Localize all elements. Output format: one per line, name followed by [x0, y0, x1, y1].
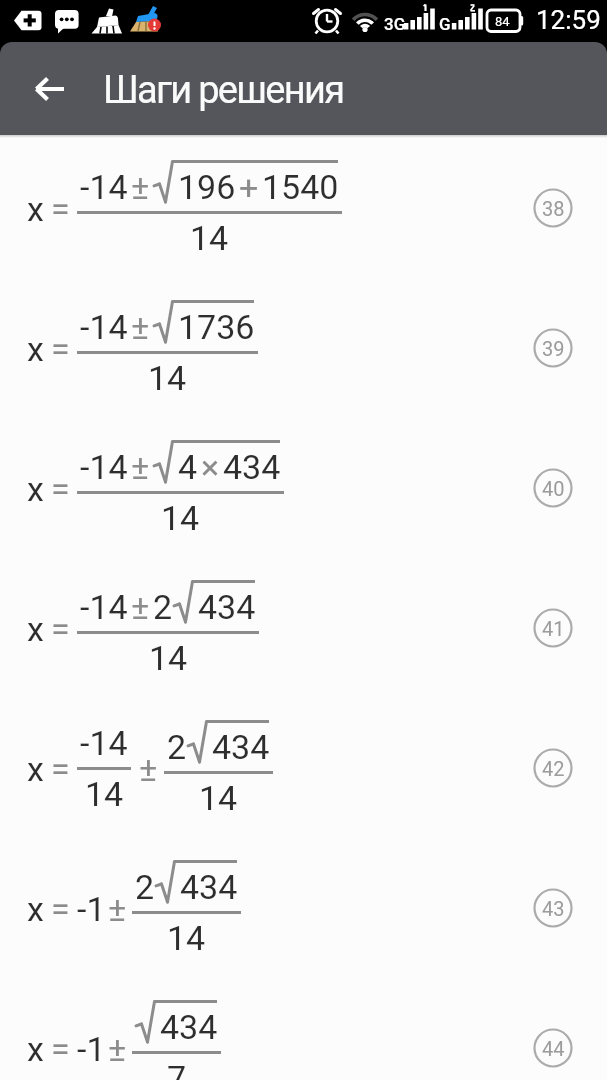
staticText: -14	[80, 307, 128, 347]
staticText: =	[51, 1029, 70, 1069]
button[interactable]	[0, 42, 99, 135]
staticText: 84	[495, 14, 510, 29]
staticText: x	[27, 889, 44, 929]
staticText: -14	[80, 447, 128, 487]
staticText: 434	[223, 447, 281, 487]
staticText: Шаги решения	[103, 68, 344, 113]
staticText: 14	[149, 638, 188, 678]
button[interactable]: x	[0, 838, 607, 978]
staticText: 12:59	[536, 5, 601, 35]
staticText: ±	[131, 587, 150, 627]
staticText: =	[51, 609, 70, 649]
staticText: 434	[212, 727, 270, 767]
staticText: G	[439, 14, 451, 34]
staticText: 434	[160, 1007, 218, 1047]
staticText: 2	[167, 727, 187, 767]
staticText: 196	[178, 167, 236, 207]
staticText: +	[239, 167, 259, 207]
staticText: 39	[542, 337, 565, 360]
staticText: =	[51, 749, 70, 789]
staticText: =	[51, 889, 70, 929]
staticText: 14	[199, 778, 238, 818]
staticText: ×	[201, 447, 220, 487]
staticText: 2	[153, 587, 173, 627]
staticText: 3G	[384, 14, 406, 34]
staticText: 38	[542, 197, 565, 220]
staticText: -1	[77, 1029, 106, 1069]
staticText: 4	[178, 447, 198, 487]
button[interactable]: x	[0, 418, 607, 558]
staticText: =	[51, 189, 70, 229]
staticText: ±	[139, 749, 158, 789]
staticText: 41	[542, 617, 565, 640]
staticText: ±	[108, 1029, 127, 1069]
staticText: 434	[180, 867, 238, 907]
staticText: =	[51, 469, 70, 509]
staticText: -14	[80, 723, 128, 763]
staticText: 14	[148, 358, 187, 398]
button[interactable]: x	[0, 138, 607, 278]
staticText: x	[27, 609, 44, 649]
staticText: 7	[167, 1058, 187, 1080]
staticText: ±	[131, 167, 150, 207]
staticText: 14	[190, 218, 229, 258]
staticText: 14	[161, 498, 200, 538]
staticText: ±	[108, 889, 127, 929]
staticText: 43	[542, 897, 565, 920]
staticText: x	[27, 1029, 44, 1069]
staticText: -14	[80, 587, 128, 627]
button[interactable]: x	[0, 978, 607, 1080]
staticText: x	[27, 469, 44, 509]
staticText: x	[27, 329, 44, 369]
staticText: -14	[80, 167, 128, 207]
staticText: -1	[77, 889, 106, 929]
staticText: ±	[131, 447, 150, 487]
staticText: 14	[85, 774, 124, 814]
staticText: 1540	[262, 167, 339, 207]
staticText: 14	[167, 918, 206, 958]
staticText: ±	[131, 307, 150, 347]
staticText: 1736	[178, 307, 255, 347]
button[interactable]: x	[0, 558, 607, 698]
staticText: 42	[542, 757, 565, 780]
button[interactable]: x	[0, 278, 607, 418]
staticText: 40	[542, 477, 565, 500]
button[interactable]: x	[0, 698, 607, 838]
staticText: 434	[198, 587, 256, 627]
staticText: x	[27, 749, 44, 789]
staticText: 2	[135, 867, 155, 907]
staticText: =	[51, 329, 70, 369]
staticText: 44	[542, 1037, 565, 1060]
staticText: x	[27, 189, 44, 229]
